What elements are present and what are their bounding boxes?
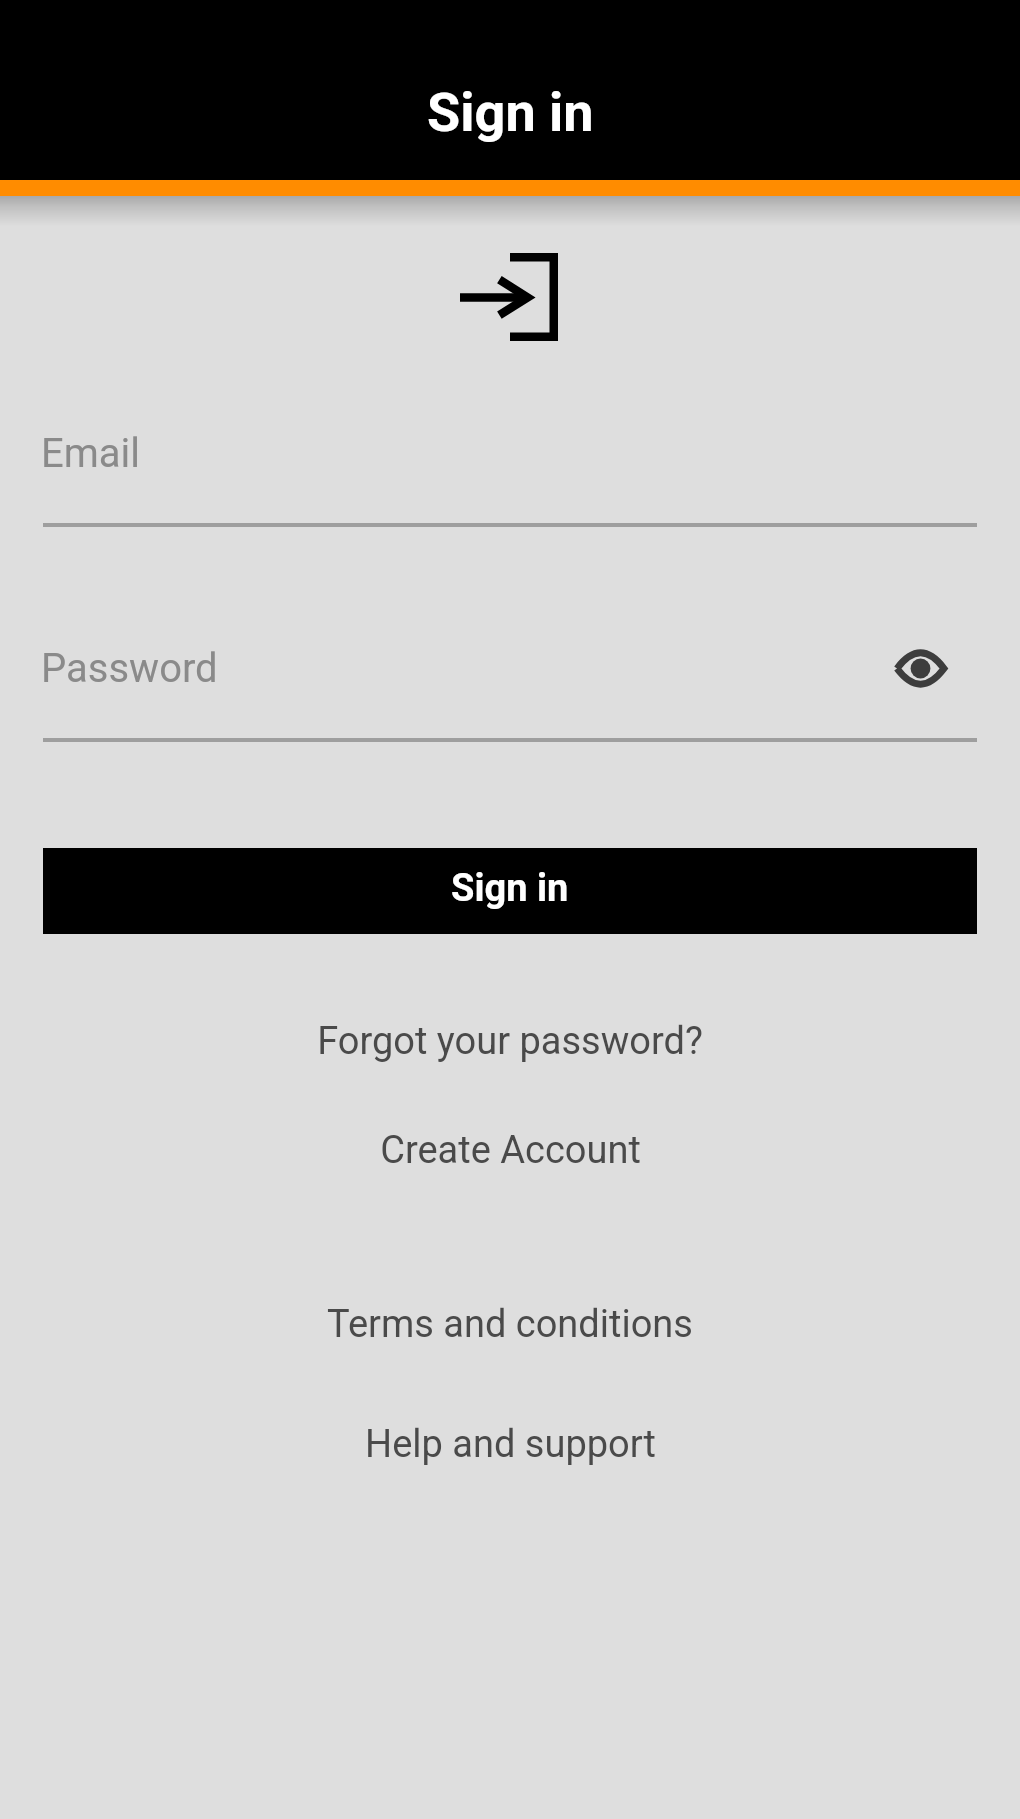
button[interactable]: Create Account [0, 1115, 1020, 1185]
staticText: Password [41, 645, 218, 692]
staticText: Help and support [365, 1422, 656, 1467]
other: Sign in [459, 248, 559, 348]
staticText: Sign in [427, 81, 594, 144]
button[interactable]: Terms and conditions [0, 1289, 1020, 1359]
staticText: Email [41, 430, 141, 477]
button[interactable]: Password [43, 625, 977, 742]
staticText: Forgot your password? [317, 1019, 703, 1064]
button[interactable]: Show password [880, 626, 964, 710]
staticText: Terms and conditions [327, 1302, 693, 1347]
staticText: Sign in [451, 866, 569, 911]
button[interactable]: Sign in [43, 848, 977, 934]
button[interactable]: Forgot your password? [0, 1006, 1020, 1076]
staticText: Create Account [380, 1128, 641, 1173]
button[interactable]: Email [43, 410, 977, 527]
button[interactable]: Help and support [0, 1409, 1020, 1479]
